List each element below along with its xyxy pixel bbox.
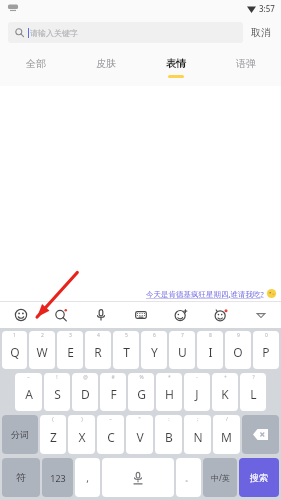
staticText: / bbox=[226, 416, 228, 423]
staticText: ) bbox=[81, 416, 83, 423]
staticText: Q bbox=[10, 344, 20, 360]
button[interactable]: - bbox=[184, 373, 210, 411]
button[interactable]: 5 bbox=[113, 331, 139, 369]
button[interactable]: 123 bbox=[42, 458, 73, 497]
staticText: : bbox=[168, 416, 170, 423]
button[interactable]: 7 bbox=[169, 331, 195, 369]
button[interactable]: " bbox=[126, 415, 153, 454]
button[interactable]: Backspace bbox=[242, 415, 279, 454]
staticText: R bbox=[94, 344, 102, 360]
button[interactable]: Expression bbox=[201, 302, 241, 328]
staticText: M bbox=[221, 429, 232, 445]
button[interactable]: 1 bbox=[2, 331, 27, 369]
button[interactable]: ) bbox=[68, 415, 95, 454]
staticText: J bbox=[195, 386, 199, 402]
button[interactable]: 2 bbox=[29, 331, 55, 369]
button[interactable]: * bbox=[156, 373, 182, 411]
button[interactable]: + bbox=[212, 373, 238, 411]
staticText: F bbox=[110, 386, 117, 402]
staticText: 9 bbox=[237, 332, 240, 339]
staticText: 123 bbox=[50, 472, 66, 484]
staticText: 中/英 bbox=[211, 472, 230, 483]
staticText: V bbox=[136, 429, 144, 445]
button[interactable]: # bbox=[100, 373, 126, 411]
staticText: Y bbox=[151, 344, 158, 360]
button[interactable]: ; bbox=[184, 415, 211, 454]
staticText: K bbox=[221, 386, 229, 402]
button[interactable]: 请输入关键字 bbox=[8, 22, 243, 43]
button[interactable]: , bbox=[75, 458, 100, 497]
button[interactable]: 。 bbox=[176, 458, 201, 497]
staticText: 1 bbox=[13, 332, 16, 339]
staticText: " bbox=[138, 416, 141, 423]
button[interactable]: 9 bbox=[225, 331, 251, 369]
staticText: P bbox=[262, 344, 270, 360]
staticText: ( bbox=[52, 416, 54, 423]
staticText: S bbox=[54, 386, 61, 402]
button[interactable]: 3 bbox=[57, 331, 83, 369]
staticText: 0 bbox=[265, 332, 268, 339]
staticText: L bbox=[250, 386, 257, 402]
button[interactable]: ~ bbox=[15, 373, 42, 411]
staticText: 分词 bbox=[11, 429, 29, 440]
staticText: , bbox=[86, 471, 89, 485]
staticText: 请输入关键字 bbox=[30, 28, 78, 38]
staticText: # bbox=[111, 374, 115, 381]
staticText: 全部 bbox=[26, 57, 46, 70]
staticText: 皮肤 bbox=[96, 57, 116, 70]
staticText: - bbox=[196, 374, 198, 381]
button[interactable]: 6 bbox=[141, 331, 167, 369]
staticText: G bbox=[137, 386, 146, 402]
staticText: 4 bbox=[97, 332, 100, 339]
button[interactable]: Collapse keyboard bbox=[241, 302, 281, 328]
button[interactable]: ? bbox=[240, 373, 266, 411]
staticText: X bbox=[78, 429, 86, 445]
staticText: 符 bbox=[16, 471, 26, 484]
button[interactable]: 4 bbox=[85, 331, 111, 369]
staticText: 6 bbox=[153, 332, 156, 339]
button[interactable]: @ bbox=[72, 373, 98, 411]
button[interactable]: Search bbox=[41, 302, 81, 328]
staticText: H bbox=[165, 386, 174, 402]
staticText: ! bbox=[56, 374, 58, 381]
button[interactable]: 取消 bbox=[243, 26, 273, 39]
button[interactable]: / bbox=[213, 415, 240, 454]
button[interactable]: 今天是肯德基疯狂星期四,谁请我吃? bbox=[146, 288, 277, 299]
staticText: ~ bbox=[27, 374, 30, 381]
button[interactable]: Keyboard bbox=[121, 302, 161, 328]
button[interactable]: Stickers bbox=[161, 302, 201, 328]
button[interactable]: Voice input bbox=[81, 302, 121, 328]
button[interactable]: 全部 bbox=[0, 48, 71, 86]
staticText: % bbox=[139, 374, 144, 381]
button[interactable]: 分词 bbox=[2, 415, 38, 454]
button[interactable]: 搜索 bbox=[239, 458, 279, 497]
staticText: A bbox=[25, 386, 33, 402]
staticText: Z bbox=[50, 429, 57, 445]
button[interactable]: % bbox=[128, 373, 154, 411]
button[interactable]: Emoji bbox=[0, 302, 41, 328]
button[interactable]: : bbox=[155, 415, 182, 454]
button[interactable]: 中/英 bbox=[203, 458, 237, 497]
staticText: ; bbox=[197, 416, 199, 423]
button[interactable]: 0 bbox=[253, 331, 279, 369]
button[interactable]: ! bbox=[44, 373, 70, 411]
staticText: 8 bbox=[209, 332, 212, 339]
button[interactable]: 皮肤 bbox=[71, 48, 141, 86]
staticText: 搜索 bbox=[250, 472, 268, 483]
staticText: 语弹 bbox=[236, 57, 256, 70]
staticText: D bbox=[81, 386, 90, 402]
button[interactable]: 语弹 bbox=[211, 48, 281, 86]
button[interactable]: ~ bbox=[97, 415, 124, 454]
staticText: W bbox=[36, 344, 48, 360]
button[interactable]: 符 bbox=[2, 458, 40, 497]
staticText: ? bbox=[252, 374, 255, 381]
button[interactable]: 8 bbox=[197, 331, 223, 369]
button[interactable]: ( bbox=[40, 415, 66, 454]
staticText: B bbox=[165, 429, 173, 445]
staticText: 取消 bbox=[251, 26, 271, 39]
staticText: 2 bbox=[41, 332, 44, 339]
staticText: 5 bbox=[125, 332, 128, 339]
button[interactable]: 表情 bbox=[141, 48, 211, 86]
button[interactable]: Space bbox=[102, 458, 174, 497]
staticText: 。 bbox=[185, 473, 193, 483]
